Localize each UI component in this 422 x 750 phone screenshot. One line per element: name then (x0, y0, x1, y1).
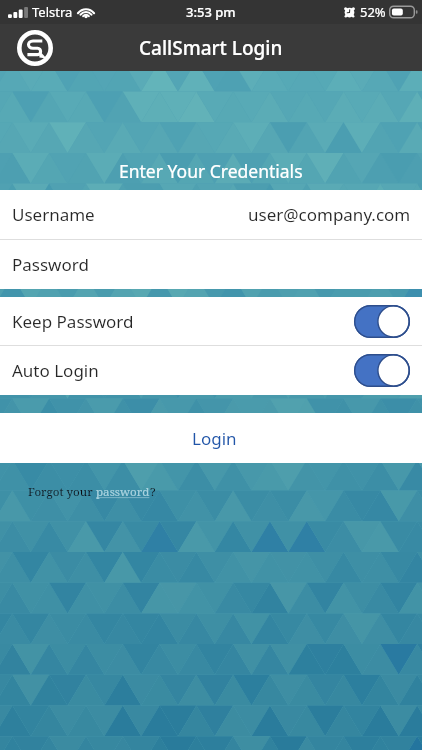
button[interactable]: Login (0, 413, 422, 463)
staticText: ? (150, 484, 156, 500)
staticText: CallSmart Login (139, 35, 283, 61)
button[interactable]: Username (0, 190, 422, 239)
staticText: Auto Login (12, 359, 99, 382)
staticText: Username (12, 203, 95, 226)
button[interactable]: Auto Login (0, 346, 422, 395)
staticText: Login (192, 427, 237, 450)
staticText: Keep Password (12, 310, 134, 333)
button[interactable]: Forgot your (28, 484, 422, 500)
staticText: password (96, 484, 150, 500)
button[interactable]: Keep Password (0, 297, 422, 345)
staticText: 3:53 pm (186, 3, 236, 21)
button[interactable]: CallSmart logo (17, 30, 53, 66)
staticText: Forgot your (28, 484, 96, 500)
button[interactable]: Auto Login (354, 354, 410, 387)
staticText: Telstra (32, 3, 73, 21)
button[interactable]: Keep Password (354, 305, 410, 338)
staticText: 52% (360, 3, 386, 21)
staticText: Password (12, 253, 89, 276)
staticText: user@company.com (248, 203, 411, 226)
staticText: Enter Your Credentials (119, 159, 303, 183)
button[interactable]: Password (0, 240, 422, 289)
